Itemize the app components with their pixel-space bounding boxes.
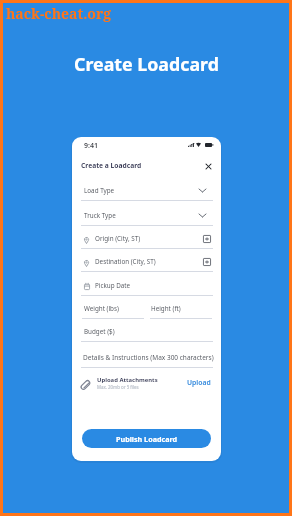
staticText: Details & Instructions (Max 300 characte… (83, 353, 214, 362)
staticText: Publish Loadcard (116, 434, 178, 444)
staticText: Max. 20mb or 5 files (97, 384, 139, 390)
staticText: Destination (City, ST) (95, 257, 156, 266)
staticText: 9:41 (84, 141, 98, 151)
button[interactable]: Budget ($) (81, 324, 115, 338)
button[interactable]: Destination (City, ST) (92, 254, 156, 268)
button[interactable]: Expand (196, 209, 208, 221)
staticText: Budget ($) (84, 327, 115, 336)
staticText: Create Loadcard (74, 52, 219, 76)
staticText: Weight (lbs) (84, 304, 119, 313)
staticText: Load Type (84, 186, 115, 195)
button[interactable]: Publish Loadcard (82, 429, 211, 448)
button[interactable]: Origin (City, ST) (92, 231, 141, 245)
button[interactable]: Upload (185, 376, 213, 389)
button[interactable]: Close (202, 160, 214, 172)
button[interactable]: Add (201, 256, 212, 267)
button[interactable]: Expand (196, 184, 208, 196)
button[interactable]: Height (ft) (148, 301, 181, 315)
staticText: Pickup Date (95, 281, 131, 290)
button[interactable]: Pickup Date (92, 278, 131, 292)
staticText: hack-cheat.org (6, 4, 112, 23)
staticText: Origin (City, ST) (95, 234, 141, 243)
staticText: Upload Attachments (97, 376, 158, 384)
staticText: Truck Type (84, 211, 116, 220)
button[interactable]: Details & Instructions (Max 300 characte… (80, 350, 214, 364)
button[interactable]: Load Type (81, 183, 115, 197)
button[interactable]: Weight (lbs) (81, 301, 119, 315)
button[interactable]: Add (201, 233, 212, 244)
button[interactable]: Truck Type (81, 208, 116, 222)
staticText: Upload (187, 378, 211, 387)
staticText: Create a Loadcard (81, 161, 142, 170)
staticText: Height (ft) (151, 304, 181, 313)
